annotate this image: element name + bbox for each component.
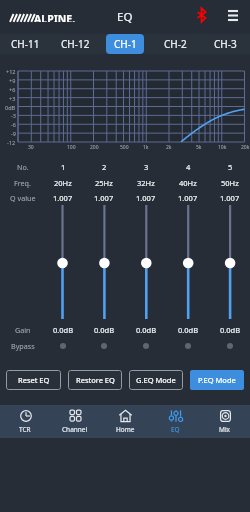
- staticText: 1.007: [220, 193, 240, 203]
- staticText: 0.0dB: [136, 325, 157, 335]
- staticText: 1.007: [53, 193, 73, 203]
- staticText: 0.0dB: [220, 325, 241, 335]
- staticText: 0.0dB: [53, 325, 74, 335]
- staticText: 32Hz: [137, 178, 155, 188]
- staticText: 20k: [241, 144, 250, 151]
- staticText: Reset EQ: [18, 375, 50, 385]
- button[interactable]: CH-3: [206, 34, 244, 54]
- staticText: 30: [28, 144, 34, 151]
- staticText: ALPINE.: [34, 12, 76, 22]
- staticText: 1: [61, 162, 66, 172]
- button[interactable]: Gain slider: [136, 255, 156, 273]
- staticText: Restore EQ: [76, 375, 115, 385]
- button[interactable]: G.EQ Mode: [129, 370, 183, 390]
- staticText: 1.007: [94, 193, 114, 203]
- button[interactable]: CH-11: [6, 34, 44, 54]
- button[interactable]: Gain slider: [178, 255, 198, 273]
- button[interactable]: TCR: [0, 405, 50, 438]
- staticText: Home: [116, 425, 135, 434]
- staticText: -12: [7, 139, 16, 146]
- staticText: G.EQ Mode: [136, 375, 176, 385]
- button[interactable]: CH-2: [156, 34, 194, 54]
- staticText: -6: [11, 121, 16, 128]
- staticText: Freq.: [14, 178, 31, 188]
- staticText: -3: [11, 112, 16, 119]
- button[interactable]: Reset EQ: [6, 370, 61, 390]
- staticText: 10k: [218, 144, 227, 151]
- staticText: 100: [67, 144, 76, 151]
- staticText: 25Hz: [95, 178, 113, 188]
- staticText: 0dB: [5, 104, 16, 111]
- staticText: Channel: [62, 425, 88, 434]
- staticText: P.EQ Mode: [198, 375, 236, 385]
- staticText: 500: [120, 144, 129, 151]
- staticText: 200: [90, 144, 99, 151]
- staticText: 1k: [143, 144, 149, 151]
- staticText: CH-1: [114, 37, 137, 51]
- button[interactable]: Bypass toggle: [181, 339, 195, 353]
- button[interactable]: Gain slider: [53, 255, 73, 273]
- staticText: EQ: [117, 9, 133, 25]
- staticText: 50Hz: [221, 178, 239, 188]
- staticText: 1.007: [178, 193, 198, 203]
- button[interactable]: Channel: [50, 405, 100, 438]
- button[interactable]: Bypass toggle: [56, 339, 70, 353]
- staticText: Gain: [15, 325, 31, 335]
- staticText: 3: [144, 162, 149, 172]
- button[interactable]: CH-1: [106, 34, 144, 54]
- button[interactable]: Bypass toggle: [97, 339, 111, 353]
- button[interactable]: Bypass toggle: [139, 339, 153, 353]
- staticText: 4: [186, 162, 191, 172]
- staticText: Q value: [10, 193, 36, 203]
- staticText: 20Hz: [54, 178, 72, 188]
- staticText: 5: [228, 162, 233, 172]
- staticText: CH-2: [164, 37, 187, 51]
- staticText: No.: [17, 162, 29, 172]
- button[interactable]: Bluetooth: [194, 4, 209, 26]
- staticText: 0.0dB: [178, 325, 199, 335]
- staticText: -9: [11, 130, 16, 137]
- button[interactable]: Gain slider: [220, 255, 240, 273]
- staticText: 0.0dB: [94, 325, 115, 335]
- staticText: 40Hz: [179, 178, 197, 188]
- button[interactable]: Gain slider: [94, 255, 114, 273]
- staticText: TCR: [19, 425, 31, 434]
- button[interactable]: Home: [100, 405, 150, 438]
- staticText: +3: [9, 95, 16, 102]
- staticText: CH-11: [11, 37, 40, 51]
- staticText: +12: [6, 68, 16, 75]
- staticText: 5k: [196, 144, 202, 151]
- staticText: EQ: [171, 425, 180, 434]
- button[interactable]: CH-12: [56, 34, 94, 54]
- staticText: Bypass: [11, 341, 35, 351]
- button[interactable]: Bypass toggle: [223, 339, 237, 353]
- staticText: CH-3: [214, 37, 237, 51]
- button[interactable]: Mix: [200, 405, 250, 438]
- button[interactable]: Menu: [224, 4, 242, 26]
- staticText: Mix: [219, 425, 231, 434]
- staticText: 2k: [166, 144, 172, 151]
- button[interactable]: P.EQ Mode: [190, 370, 244, 390]
- button[interactable]: EQ: [150, 405, 200, 438]
- staticText: 2: [102, 162, 107, 172]
- staticText: +6: [9, 86, 16, 93]
- staticText: +9: [9, 77, 16, 84]
- staticText: CH-12: [61, 37, 90, 51]
- staticText: 1.007: [136, 193, 156, 203]
- button[interactable]: Restore EQ: [68, 370, 122, 390]
